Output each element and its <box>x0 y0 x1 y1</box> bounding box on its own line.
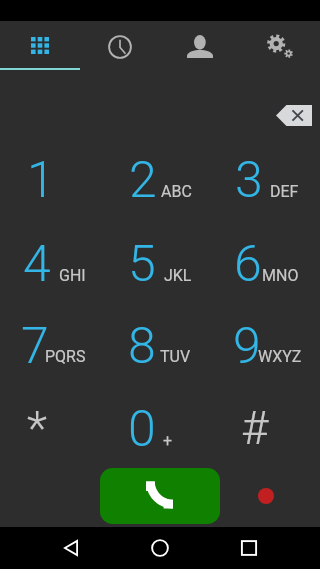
button[interactable]: Key 1 <box>0 121 107 204</box>
staticText: GHI <box>59 266 86 285</box>
staticText: PQRS <box>45 347 86 366</box>
button[interactable]: Contacts <box>160 21 240 70</box>
button[interactable]: Key 8 <box>107 287 214 370</box>
button[interactable]: Key * <box>0 370 107 453</box>
staticText: MNO <box>262 266 299 285</box>
staticText: 7 <box>21 317 49 376</box>
staticText: DEF <box>270 182 299 201</box>
staticText: WXYZ <box>258 347 302 366</box>
button[interactable]: Voicemail <box>258 488 274 504</box>
staticText: 8 <box>128 317 156 376</box>
button[interactable]: Settings <box>240 21 320 70</box>
staticText: ABC <box>161 182 192 201</box>
button[interactable]: Call history <box>80 21 160 70</box>
staticText: 2 <box>129 151 157 210</box>
button[interactable]: Key # <box>213 370 320 453</box>
button[interactable]: Key 4 <box>0 205 107 288</box>
staticText: 1 <box>27 151 55 210</box>
staticText: 9 <box>233 317 261 376</box>
button[interactable]: Key 3 <box>213 121 320 204</box>
button[interactable]: Key 7 <box>0 287 107 370</box>
button[interactable]: Key 5 <box>107 205 214 288</box>
staticText: 6 <box>234 235 262 294</box>
staticText: # <box>241 400 269 455</box>
button[interactable]: Key 0 <box>107 370 214 453</box>
button[interactable]: Key 2 <box>107 121 214 204</box>
button[interactable]: Home <box>136 527 184 569</box>
staticText: 3 <box>235 151 263 210</box>
button[interactable]: Backspace <box>268 93 320 137</box>
staticText: JKL <box>164 266 192 285</box>
staticText: 0 <box>128 400 156 459</box>
staticText: * <box>27 400 47 455</box>
button[interactable]: Dialpad <box>0 21 80 70</box>
staticText: TUV <box>160 347 191 366</box>
button[interactable]: Back <box>47 527 95 569</box>
button[interactable]: Call <box>100 468 220 524</box>
staticText: 4 <box>23 235 51 294</box>
button[interactable]: Recent apps <box>225 527 273 569</box>
staticText: + <box>163 431 173 450</box>
button[interactable]: Key 6 <box>213 205 320 288</box>
button[interactable]: Key 9 <box>213 287 320 370</box>
staticText: 5 <box>128 235 156 294</box>
